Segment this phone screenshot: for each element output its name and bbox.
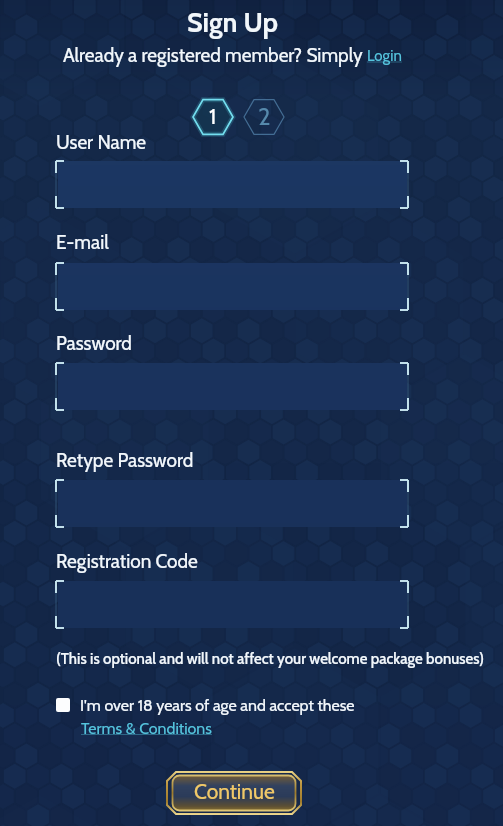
button[interactable]: Login	[367, 47, 402, 65]
button[interactable]: I'm over 18 years of age and accept thes…	[56, 696, 355, 738]
button[interactable]: 1	[200, 100, 226, 133]
staticText: (This is optional and will not affect yo…	[56, 650, 484, 668]
button[interactable]: Terms & Conditions	[81, 719, 212, 738]
button[interactable]: 2	[251, 100, 277, 133]
staticText: I'm over 18 years of age and accept thes…	[80, 696, 355, 715]
staticText: Already a registered member? Simply	[63, 44, 367, 67]
staticText: Login	[367, 47, 402, 65]
staticText: Sign Up	[187, 6, 278, 39]
staticText: Password	[56, 332, 132, 355]
staticText: Retype Password	[56, 449, 194, 472]
staticText: User Name	[56, 131, 147, 154]
staticText: Registration Code	[56, 550, 198, 573]
staticText: 1	[209, 103, 217, 130]
staticText: 2	[258, 102, 271, 131]
button[interactable]: Continue	[166, 771, 302, 815]
staticText: Continue	[194, 779, 275, 805]
staticText: E-mail	[56, 231, 109, 254]
